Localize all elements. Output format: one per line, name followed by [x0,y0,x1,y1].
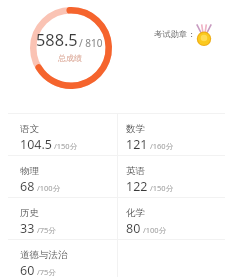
staticText: 104.5 [20,136,52,153]
staticText: 60 [20,262,35,277]
staticText: 588.5 [36,29,78,51]
staticText: / 810 [79,36,103,50]
staticText: /150分 [150,183,174,193]
button[interactable]: 英语 [118,156,236,197]
staticText: 总成绩 [58,53,82,63]
button[interactable]: 化学 [118,198,236,239]
button[interactable]: 物理 [0,156,117,197]
staticText: 历史 [20,207,39,219]
staticText: 数学 [126,123,145,135]
staticText: /100分 [37,183,61,193]
staticText: 化学 [126,207,145,219]
staticText: /75分 [37,267,56,277]
staticText: 语文 [20,123,39,135]
staticText: 121 [126,136,148,153]
staticText: 68 [20,178,35,195]
staticText: /100分 [143,225,167,235]
staticText: /150分 [54,141,78,151]
staticText: 英语 [126,165,145,177]
other: Exam medal [195,22,213,46]
staticText: /75分 [37,225,56,235]
staticText: 物理 [20,165,39,177]
button[interactable]: 历史 [0,198,117,239]
staticText: 122 [126,178,148,195]
button[interactable]: 语文 [0,114,117,155]
button[interactable]: 数学 [118,114,236,155]
staticText: 道德与法治 [20,249,68,261]
staticText: 33 [20,220,35,237]
staticText: 考试勋章： [154,29,196,39]
button[interactable]: 道德与法治 [0,240,117,277]
staticText: /160分 [150,141,174,151]
staticText: 80 [126,220,141,237]
